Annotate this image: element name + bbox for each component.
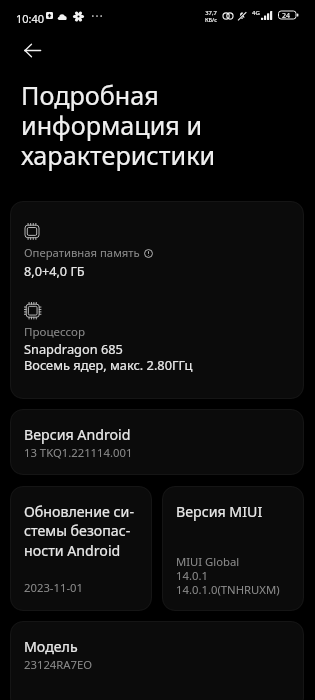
staticText: Процессор: [24, 324, 86, 340]
staticText: 37,7 КБ/с: [204, 9, 218, 24]
button[interactable]: Версия MIUI: [162, 486, 304, 611]
button[interactable]: Оперативная память: [10, 201, 304, 399]
staticText: 2023-11-01: [24, 580, 83, 595]
button[interactable]: Версия Android: [10, 409, 304, 475]
staticText: Модель: [24, 637, 78, 656]
button[interactable]: Обновление си- стемы безопас- ности Andr…: [10, 486, 152, 611]
staticText: Snapdragon 685 Восемь ядер, макс. 2.80ГГ…: [24, 340, 193, 374]
staticText: 13 TKQ1.221114.001: [24, 445, 133, 460]
staticText: Версия MIUI: [176, 502, 263, 521]
staticText: Подробная информация и характеристики: [21, 78, 216, 172]
staticText: Обновление си- стемы безопас- ности Andr…: [24, 502, 134, 560]
staticText: Оперативная память: [24, 245, 140, 260]
staticText: MIUI Global 14.0.1 14.0.1.0(TNHRUXM): [176, 554, 280, 597]
staticText: 23124RA7EO: [24, 657, 93, 672]
staticText: Версия Android: [24, 425, 131, 444]
staticText: 4G: [252, 9, 260, 17]
staticText: 24: [282, 11, 291, 21]
button[interactable]: Back: [14, 32, 50, 68]
staticText: 8,0+4,0 ГБ: [24, 262, 85, 279]
button[interactable]: Модель: [10, 621, 304, 700]
staticText: 10:40: [16, 11, 45, 26]
